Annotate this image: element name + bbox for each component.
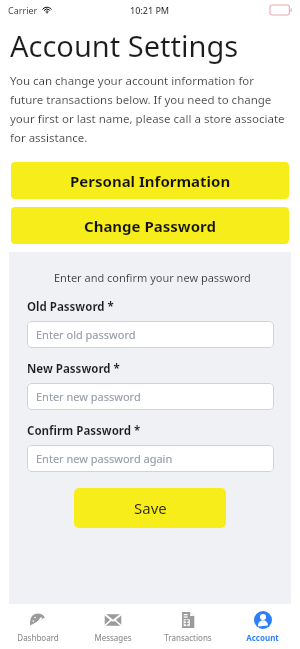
staticText: Confirm Password * <box>27 423 141 439</box>
button[interactable]: Dashboard <box>0 604 75 649</box>
staticText: Transactions <box>164 632 212 643</box>
staticText: Save <box>134 498 167 518</box>
staticText: New Password * <box>27 361 120 377</box>
staticText: Enter new password again <box>36 451 173 466</box>
staticText: Messages <box>94 632 132 643</box>
button[interactable]: Account <box>225 604 300 649</box>
button[interactable]: Personal Information <box>11 162 289 199</box>
staticText: Personal Information <box>70 171 231 191</box>
staticText: Enter new password <box>36 389 141 404</box>
staticText: Account <box>246 632 279 643</box>
button[interactable]: Messages <box>75 604 150 649</box>
staticText: Enter old password <box>36 327 136 342</box>
button[interactable]: Change Password <box>11 207 289 244</box>
staticText: Dashboard <box>17 632 59 643</box>
staticText: Account Settings <box>10 26 239 65</box>
button[interactable]: Transactions <box>150 604 225 649</box>
staticText: 10:21 PM <box>130 4 170 16</box>
button[interactable]: Enter old password <box>27 321 274 348</box>
staticText: Carrier <box>8 4 38 16</box>
staticText: Old Password * <box>27 299 114 315</box>
button[interactable]: Enter new password <box>27 383 274 410</box>
staticText: Enter and confirm your new password <box>54 270 251 285</box>
staticText: Change Password <box>84 216 216 236</box>
button[interactable]: Enter new password again <box>27 445 274 472</box>
button[interactable]: Save <box>74 488 226 528</box>
staticText: You can change your account information … <box>10 73 288 145</box>
